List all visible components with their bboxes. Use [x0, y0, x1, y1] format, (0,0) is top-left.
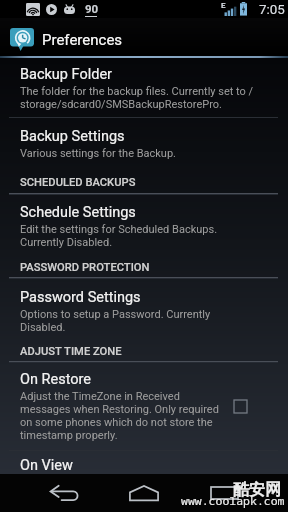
staticText: Options to setup a Password. Currently D… [20, 308, 255, 334]
button[interactable]: On Restore [0, 363, 288, 450]
staticText: E [221, 1, 226, 10]
staticText: ADJUST TIME ZONE [20, 345, 122, 358]
staticText: Schedule Settings [20, 204, 136, 221]
button[interactable]: Schedule Settings [0, 195, 288, 249]
staticText: On Restore [20, 371, 92, 388]
button[interactable]: On View [0, 451, 288, 474]
staticText: The folder for the backup files. Current… [20, 85, 255, 111]
staticText: Password Settings [20, 289, 141, 306]
button[interactable]: Back [44, 474, 84, 512]
staticText: 酷安网 [233, 480, 281, 500]
staticText: PASSWORD PROTECTION [20, 261, 150, 274]
staticText: SCHEDULED BACKUPS [20, 176, 136, 189]
button[interactable]: Toggle On Restore [234, 400, 247, 413]
staticText: Edit the settings for Scheduled Backups.… [20, 223, 255, 249]
button[interactable]: Backup Settings [0, 118, 288, 160]
staticText: On View [20, 457, 73, 474]
staticText: Various settings for the Backup. [20, 147, 177, 160]
staticText: Preferences [42, 31, 123, 49]
staticText: Backup Settings [20, 128, 125, 145]
button[interactable]: Home [124, 474, 164, 512]
staticText: 90 [85, 2, 99, 15]
staticText: Adjust the TimeZone in Received messages… [20, 390, 220, 442]
button[interactable]: Preferences [0, 18, 288, 56]
staticText: Backup Folder [20, 66, 113, 83]
button[interactable]: Recent apps [204, 474, 244, 512]
button[interactable]: Password Settings [0, 279, 288, 334]
staticText: www.coolapk.com [181, 493, 285, 509]
button[interactable]: Backup Folder [0, 58, 288, 117]
staticText: 7:05 [259, 2, 285, 18]
